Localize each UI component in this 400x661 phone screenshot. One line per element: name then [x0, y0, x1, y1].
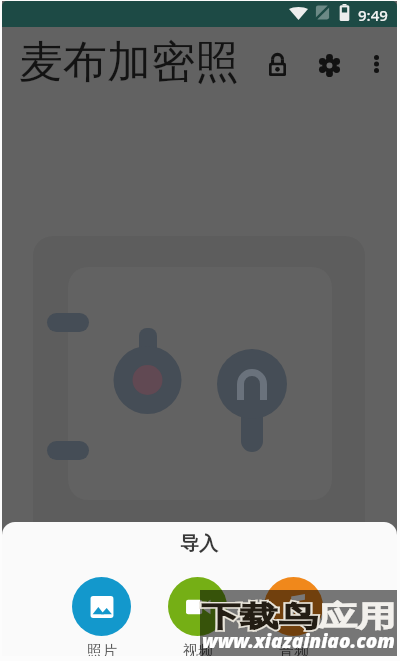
staticText: 麦布加密照: [19, 35, 239, 90]
button[interactable]: Settings: [309, 45, 349, 85]
button[interactable]: More options: [356, 44, 396, 84]
staticText: 应用: [318, 599, 396, 635]
button[interactable]: 音频: [264, 577, 323, 656]
staticText: 视频: [183, 642, 213, 656]
button[interactable]: 视频: [168, 577, 227, 656]
staticText: 照片: [87, 642, 117, 656]
staticText: 导入: [180, 532, 218, 556]
staticText: 下载鸟: [201, 599, 318, 635]
staticText: 音频: [279, 642, 309, 656]
button[interactable]: Lock: [257, 44, 297, 84]
staticText: 9:49: [358, 5, 388, 25]
staticText: 下载鸟: [201, 599, 318, 635]
button[interactable]: 照片: [72, 577, 131, 656]
staticText: www.xiazainiao.com: [202, 628, 395, 654]
